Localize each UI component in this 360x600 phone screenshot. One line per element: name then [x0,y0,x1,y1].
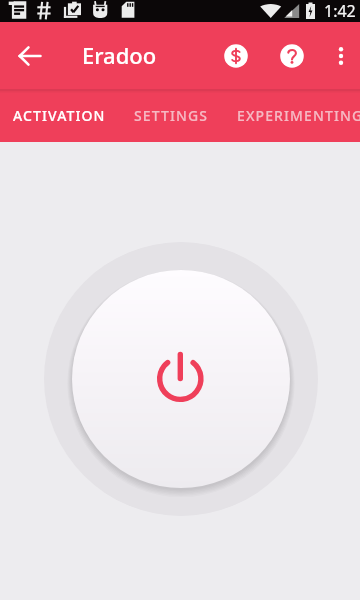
button[interactable]: Help [268,22,316,89]
staticText: 1:42 [324,0,356,21]
button[interactable]: More options [322,22,360,89]
staticText: ACTIVATION [13,106,106,125]
button[interactable]: Donate [212,22,260,89]
button[interactable]: SETTINGS [120,89,223,142]
staticText: SETTINGS [134,106,209,125]
button[interactable]: ACTIVATION [0,89,120,142]
staticText: EXPERIMENTING [237,106,360,125]
button[interactable]: EXPERIMENTING [223,89,360,142]
staticText: Eradoo [82,40,157,70]
button[interactable]: Navigate up [7,22,53,89]
